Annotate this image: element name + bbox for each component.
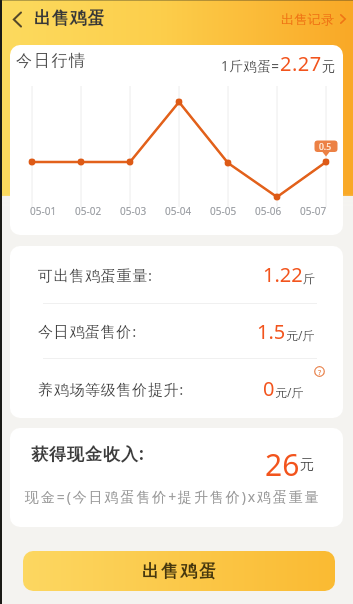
staticText: 出售鸡蛋 [34,8,106,29]
staticText: 元/斤 [275,384,304,400]
staticText: 养鸡场等级售价提升: [38,379,185,399]
staticText: ? [318,367,322,377]
staticText: 元 [322,58,336,75]
staticText: 1.5 [257,318,286,345]
staticText: 可出售鸡蛋重量: [38,265,153,285]
button[interactable]: 今日鸡蛋售价: [38,304,315,358]
staticText: 1斤鸡蛋= [221,57,280,75]
staticText: 05-07 [300,204,327,218]
button[interactable]: 出售鸡蛋 [23,551,335,591]
staticText: 05-04 [165,204,192,218]
staticText: 05-06 [255,204,282,218]
button[interactable]: 可出售鸡蛋重量: [38,246,315,303]
staticText: 05-02 [75,204,102,218]
button[interactable]: 养鸡场等级售价提升: [38,359,325,418]
staticText: 出售鸡蛋 [141,561,217,582]
staticText: 0 [263,375,275,402]
staticText: 0.5 [319,141,332,153]
staticText: 2.27 [280,50,322,77]
staticText: 1.22 [263,261,303,288]
staticText: 今日行情 [16,51,87,71]
staticText: 出售记录 [281,11,335,27]
staticText: 今日鸡蛋售价: [38,321,137,341]
staticText: 05-01 [30,204,57,218]
button[interactable] [4,6,30,32]
staticText: 元 [300,456,314,474]
staticText: 现金=(今日鸡蛋售价+提升售价)x鸡蛋重量 [25,487,321,506]
staticText: 05-03 [120,204,147,218]
staticText: 05-05 [210,204,237,218]
staticText: 元/斤 [286,327,315,343]
button[interactable]: 出售记录 [281,11,346,27]
staticText: 斤 [303,271,315,286]
staticText: 26 [265,444,300,485]
staticText: 获得现金收入: [31,442,145,465]
